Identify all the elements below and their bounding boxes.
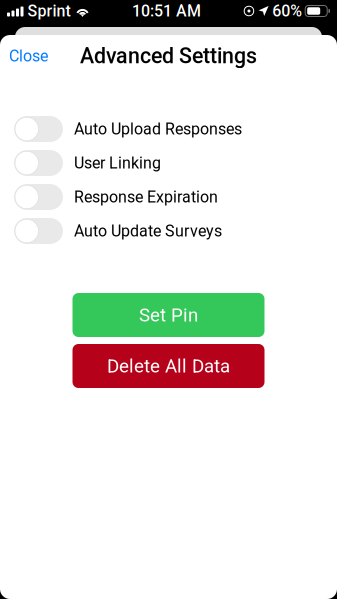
staticText: Auto Update Surveys (74, 222, 222, 240)
button[interactable]: Close (0, 39, 57, 73)
button[interactable]: Auto Update Surveys (0, 214, 337, 248)
staticText: Sprint (27, 2, 70, 20)
staticText: 10:51 AM (132, 2, 201, 20)
button[interactable]: User Linking (0, 146, 337, 180)
staticText: Set Pin (139, 304, 198, 326)
staticText: 60% (272, 2, 302, 20)
staticText: Auto Upload Responses (74, 120, 242, 138)
staticText: User Linking (74, 154, 161, 172)
staticText: Delete All Data (107, 355, 230, 377)
staticText: Close (9, 47, 48, 65)
button[interactable]: Response Expiration (0, 180, 337, 214)
button[interactable]: Delete All Data (72, 344, 264, 388)
staticText: Advanced Settings (80, 43, 257, 68)
button[interactable]: Set Pin (72, 293, 264, 337)
staticText: Response Expiration (74, 188, 218, 206)
button[interactable]: Auto Upload Responses (0, 112, 337, 146)
